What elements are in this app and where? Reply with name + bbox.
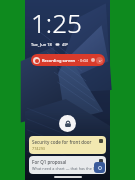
staticText: · 0:04 — [78, 58, 89, 63]
button[interactable]: Unlock — [59, 115, 76, 132]
staticText: 1:25 — [31, 5, 82, 40]
staticText: What need a chart — that has the logo? — [32, 166, 97, 171]
staticText: 49° — [62, 42, 69, 47]
staticText: 774293 — [32, 146, 46, 151]
button[interactable]: Security code for front door — [29, 136, 106, 154]
staticText: Recording screen — [42, 58, 76, 63]
staticText: Security code for front door — [32, 139, 92, 145]
button[interactable]: For Q1 proposal — [29, 156, 106, 174]
button[interactable]: Recording screen — [31, 54, 105, 66]
staticText: Tue, Jun 18 — [31, 42, 52, 47]
staticText: For Q1 proposal — [32, 159, 67, 165]
button[interactable]: Expand — [96, 57, 103, 64]
button[interactable]: Compose — [94, 162, 105, 173]
